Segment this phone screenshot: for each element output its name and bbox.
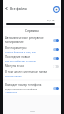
- staticText: Минуты в час: [5, 64, 25, 68]
- button[interactable]: Toggle: [53, 87, 59, 90]
- button[interactable]: Toggle: [53, 48, 59, 51]
- button[interactable]: Toggle: [53, 57, 59, 60]
- staticText: Все параметры: [5, 46, 27, 50]
- staticText: Как это работает и зачем: [5, 59, 36, 62]
- staticText: Изменить: [5, 90, 18, 93]
- staticText: Выводит номер телефона: [5, 83, 42, 87]
- button[interactable]: Все параметры: [3, 45, 61, 54]
- staticText: 47,1 ГБ: [47, 19, 55, 22]
- staticText: Будет показано в профиле: [5, 87, 38, 90]
- button[interactable]: Toggle: [53, 65, 59, 68]
- staticText: Узнать больше о том, как: [5, 50, 36, 53]
- button[interactable]: В том числе системные папки: [3, 69, 61, 78]
- staticText: Последние новые: [5, 55, 31, 59]
- button[interactable]: Toggle: [53, 39, 59, 42]
- staticText: Список папок: [5, 74, 22, 77]
- staticText: В том числе системные папки: [5, 70, 48, 74]
- button[interactable]: Выводит номер телефона: [3, 82, 61, 94]
- button[interactable]: Account: [52, 5, 60, 13]
- button[interactable]: Автоматическое резервное копирование: [3, 35, 61, 45]
- button[interactable]: Последние новые: [3, 54, 61, 63]
- staticText: Автоматическое резервное копирование: [5, 36, 51, 44]
- button[interactable]: Минуты в час: [3, 63, 61, 69]
- staticText: Все файлы: [10, 7, 27, 11]
- staticText: Сервисы: [25, 29, 39, 33]
- button[interactable]: Back: [4, 6, 9, 11]
